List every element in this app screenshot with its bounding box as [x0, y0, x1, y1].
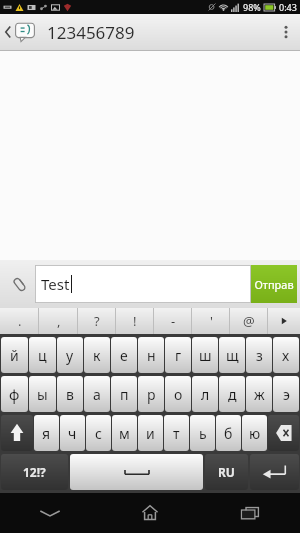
staticText: о — [174, 385, 183, 404]
staticText: ч — [68, 424, 77, 443]
staticText: я — [42, 424, 51, 443]
button[interactable]: ! — [116, 308, 154, 334]
staticText: г — [175, 346, 182, 365]
button[interactable]: Shift — [1, 415, 33, 451]
button[interactable]: в — [57, 376, 83, 412]
staticText: 98% — [243, 1, 261, 13]
button[interactable]: ф — [1, 376, 28, 412]
button[interactable]: , — [39, 308, 78, 334]
button[interactable]: щ — [219, 337, 245, 373]
staticText: . — [18, 312, 22, 330]
button[interactable]: - — [154, 308, 192, 334]
button[interactable]: е — [111, 337, 137, 373]
button[interactable]: More options — [272, 14, 300, 50]
button[interactable]: я — [34, 415, 59, 451]
staticText: л — [201, 385, 210, 404]
staticText: - — [171, 312, 176, 330]
button[interactable]: ц — [29, 337, 56, 373]
button[interactable]: . — [0, 308, 39, 334]
staticText: 12!? — [23, 464, 46, 480]
staticText: а — [93, 385, 101, 404]
staticText: ? — [94, 312, 100, 330]
button[interactable]: Test — [35, 265, 251, 303]
staticText: с — [95, 424, 102, 443]
button[interactable]: Attach — [3, 265, 35, 303]
button[interactable]: Backspace — [268, 415, 299, 451]
button[interactable]: з — [246, 337, 272, 373]
staticText: ш — [199, 346, 212, 365]
button[interactable]: ж — [246, 376, 272, 412]
button[interactable]: у — [57, 337, 83, 373]
staticText: э — [283, 385, 290, 404]
staticText: д — [228, 385, 237, 404]
staticText: ! — [133, 312, 137, 330]
staticText: ' — [210, 312, 213, 330]
staticText: у — [66, 346, 74, 365]
button[interactable]: д — [219, 376, 245, 412]
button[interactable]: ' — [192, 308, 230, 334]
staticText: з — [256, 346, 263, 365]
staticText: к — [93, 346, 101, 365]
button[interactable]: ш — [192, 337, 218, 373]
button[interactable]: Отправ — [251, 265, 297, 303]
button[interactable]: Space — [70, 454, 203, 490]
staticText: в — [66, 385, 74, 404]
staticText: п — [120, 385, 129, 404]
staticText: ы — [37, 385, 48, 404]
button[interactable]: Recent apps — [200, 493, 300, 533]
button[interactable]: Back to conversations — [4, 14, 35, 50]
button[interactable]: р — [138, 376, 164, 412]
staticText: б — [224, 424, 233, 443]
staticText: @ — [243, 312, 255, 330]
staticText: 0:43 — [279, 1, 297, 13]
button[interactable]: п — [111, 376, 137, 412]
button[interactable]: Hide keyboard — [0, 493, 100, 533]
staticText: ф — [9, 385, 20, 404]
staticText: 123456789 — [47, 21, 135, 44]
staticText: , — [57, 312, 61, 330]
button[interactable]: о — [165, 376, 191, 412]
staticText: ю — [249, 424, 261, 443]
button[interactable]: л — [192, 376, 218, 412]
staticText: ц — [38, 346, 47, 365]
staticText: й — [10, 346, 19, 365]
button[interactable]: к — [84, 337, 110, 373]
staticText: м — [119, 424, 130, 443]
button[interactable]: Enter — [250, 454, 299, 490]
button[interactable]: RU — [205, 454, 248, 490]
button[interactable]: 12!? — [1, 454, 68, 490]
button[interactable]: г — [165, 337, 191, 373]
staticText: р — [147, 385, 156, 404]
staticText: н — [147, 346, 156, 365]
staticText: щ — [226, 346, 239, 365]
staticText: RU — [218, 464, 235, 480]
button[interactable]: @ — [230, 308, 268, 334]
button[interactable]: ь — [190, 415, 215, 451]
button[interactable]: ч — [60, 415, 85, 451]
button[interactable]: н — [138, 337, 164, 373]
button[interactable]: ы — [29, 376, 56, 412]
button[interactable]: й — [1, 337, 28, 373]
button[interactable]: м — [112, 415, 137, 451]
staticText: т — [173, 424, 180, 443]
staticText: и — [146, 424, 155, 443]
staticText: Отправ — [254, 277, 294, 292]
staticText: ь — [199, 424, 207, 443]
button[interactable]: ? — [78, 308, 116, 334]
button[interactable]: б — [216, 415, 241, 451]
button[interactable]: э — [273, 376, 299, 412]
button[interactable]: Home — [100, 493, 200, 533]
button[interactable]: т — [164, 415, 189, 451]
staticText: ж — [254, 385, 265, 404]
staticText: Test — [41, 274, 70, 294]
button[interactable]: и — [138, 415, 163, 451]
button[interactable]: х — [273, 337, 299, 373]
button[interactable]: с — [86, 415, 111, 451]
staticText: х — [282, 346, 290, 365]
button[interactable]: а — [84, 376, 110, 412]
button[interactable]: More symbols — [268, 308, 300, 334]
staticText: е — [120, 346, 128, 365]
button[interactable]: ю — [242, 415, 267, 451]
